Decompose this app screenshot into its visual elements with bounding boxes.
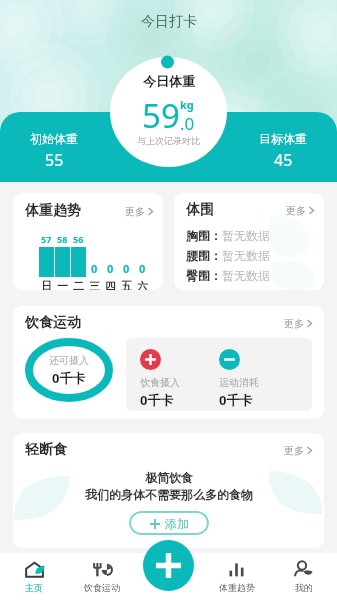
staticText: 58 [57, 233, 68, 245]
staticText: 腰围： [186, 248, 222, 263]
staticText: 今日体重 [143, 73, 195, 89]
staticText: 0千卡 [219, 391, 253, 409]
staticText: 四 [105, 279, 116, 290]
staticText: 运动消耗 [219, 376, 259, 389]
staticText: 57 [41, 233, 52, 245]
staticText: 饮食运动 [84, 582, 120, 593]
staticText: 体重趋势 [219, 582, 255, 593]
button[interactable]: 更多 [125, 205, 153, 218]
staticText: 0 [107, 261, 114, 276]
staticText: 臀围： [186, 268, 222, 283]
staticText: 我的 [295, 582, 313, 593]
staticText: 目标体重 [259, 131, 307, 146]
button[interactable]: 更多 [286, 204, 314, 217]
staticText: 与上次记录对比 [137, 135, 200, 146]
staticText: 轻断食 [25, 441, 67, 459]
button[interactable]: 体重趋势 [203, 553, 270, 600]
staticText: 更多 [286, 204, 306, 217]
staticText: 还可摄入 [49, 354, 89, 367]
staticText: 体重趋势 [25, 202, 81, 220]
staticText: 饮食摄入 [140, 376, 180, 389]
staticText: 0 [123, 261, 130, 276]
button[interactable]: 我的 [270, 553, 337, 600]
staticText: 暂无数据 [222, 228, 270, 243]
staticText: 添加 [165, 516, 189, 531]
staticText: 0千卡 [52, 369, 86, 387]
staticText: 胸围： [186, 228, 222, 243]
staticText: 六 [137, 279, 148, 290]
button[interactable]: 添加 [129, 511, 209, 535]
button[interactable]: 更多 [284, 317, 312, 330]
staticText: 暂无数据 [222, 248, 270, 263]
staticText: 59 [142, 93, 180, 138]
button[interactable]: 主页 [0, 553, 68, 600]
staticText: 55 [45, 149, 64, 171]
staticText: 体围 [186, 201, 214, 219]
staticText: .0 [180, 112, 195, 135]
staticText: 56 [73, 233, 84, 245]
button[interactable]: 轻断食 [13, 433, 324, 548]
staticText: 0千卡 [140, 391, 174, 409]
staticText: 更多 [284, 444, 304, 457]
staticText: 暂无数据 [222, 268, 270, 283]
staticText: 日 [41, 279, 52, 290]
staticText: 主页 [25, 582, 43, 593]
button[interactable]: 饮食运动 [13, 306, 324, 419]
staticText: 0 [91, 261, 98, 276]
staticText: 饮食运动 [25, 314, 81, 332]
staticText: 更多 [125, 205, 145, 218]
staticText: 二 [73, 279, 84, 290]
button[interactable]: 更多 [284, 444, 312, 457]
staticText: 今日打卡 [141, 13, 197, 31]
staticText: 五 [121, 279, 132, 290]
staticText: 45 [274, 149, 293, 171]
button[interactable]: 体重趋势 [13, 193, 163, 290]
button[interactable]: 体围 [174, 193, 324, 290]
button[interactable]: Add [143, 540, 194, 591]
button[interactable]: 饮食运动 [68, 553, 136, 600]
staticText: 我们的身体不需要那么多的食物 [85, 487, 253, 502]
staticText: kg [180, 97, 194, 112]
staticText: 极简饮食 [145, 470, 193, 485]
staticText: 0 [139, 261, 146, 276]
staticText: 更多 [284, 317, 304, 330]
staticText: 三 [89, 279, 100, 290]
staticText: 初始体重 [30, 131, 78, 146]
staticText: 一 [57, 279, 68, 290]
